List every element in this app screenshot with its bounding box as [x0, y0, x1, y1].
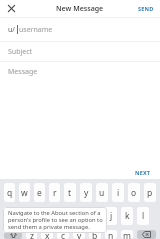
staticText: e: [37, 187, 42, 199]
staticText: a: [14, 210, 19, 222]
button[interactable]: t: [64, 183, 76, 202]
staticText: n: [108, 230, 114, 239]
staticText: y: [84, 187, 89, 199]
staticText: c: [61, 230, 66, 239]
button[interactable]: Navigate to the About section of a perso…: [3, 207, 107, 233]
staticText: SEND: [138, 5, 154, 12]
button[interactable]: o: [128, 183, 140, 202]
staticText: d: [44, 210, 50, 222]
button[interactable]: SEND: [138, 5, 154, 12]
staticText: t: [68, 187, 72, 199]
staticText: u/: [8, 25, 15, 35]
button[interactable]: e: [34, 183, 45, 202]
button[interactable]: m: [121, 230, 133, 239]
staticText: u: [99, 187, 105, 199]
button[interactable]: u: [96, 183, 108, 202]
button[interactable]: c: [57, 230, 69, 239]
staticText: username: [19, 25, 53, 35]
button[interactable]: d: [41, 207, 53, 225]
staticText: Navigate to the About section of a perso…: [8, 209, 103, 231]
staticText: l: [142, 210, 145, 222]
button[interactable]: w: [19, 183, 30, 202]
button[interactable]: j: [105, 207, 117, 225]
button[interactable]: Subject: [8, 42, 160, 61]
button[interactable]: u/: [8, 18, 160, 41]
button[interactable]: q: [4, 183, 15, 202]
staticText: w: [21, 187, 28, 199]
staticText: k: [125, 210, 130, 222]
button[interactable]: [4, 230, 22, 239]
button[interactable]: s: [26, 207, 37, 225]
button[interactable]: i: [112, 183, 124, 202]
staticText: z: [30, 230, 34, 239]
button[interactable]: a: [11, 207, 22, 225]
button[interactable]: NEXT: [135, 169, 151, 176]
button[interactable]: l: [137, 207, 149, 225]
staticText: NEXT: [135, 169, 151, 176]
button[interactable]: Message: [8, 62, 160, 82]
staticText: s: [29, 210, 34, 222]
staticText: g: [76, 210, 82, 222]
staticText: i: [117, 187, 120, 199]
staticText: New Message: [56, 4, 104, 14]
button[interactable]: k: [121, 207, 133, 225]
staticText: m: [123, 230, 131, 239]
staticText: Message: [8, 67, 38, 77]
staticText: r: [53, 187, 57, 199]
staticText: f: [62, 210, 65, 222]
staticText: q: [7, 187, 13, 199]
button[interactable]: x: [41, 230, 53, 239]
staticText: j: [110, 210, 113, 222]
button[interactable]: b: [89, 230, 101, 239]
staticText: Subject: [8, 47, 33, 57]
staticText: v: [77, 230, 82, 239]
button[interactable]: z: [26, 230, 37, 239]
staticText: x: [45, 230, 50, 239]
staticText: o: [131, 187, 137, 199]
button[interactable]: p: [144, 183, 156, 202]
button[interactable]: y: [80, 183, 92, 202]
button[interactable]: g: [73, 207, 85, 225]
button[interactable]: r: [49, 183, 60, 202]
button[interactable]: [137, 230, 156, 239]
button[interactable]: f: [57, 207, 69, 225]
button[interactable]: h: [89, 207, 101, 225]
staticText: p: [147, 187, 153, 199]
button[interactable]: n: [105, 230, 117, 239]
button[interactable]: v: [73, 230, 85, 239]
staticText: h: [92, 210, 98, 222]
button[interactable]: [8, 5, 15, 12]
staticText: b: [92, 230, 98, 239]
